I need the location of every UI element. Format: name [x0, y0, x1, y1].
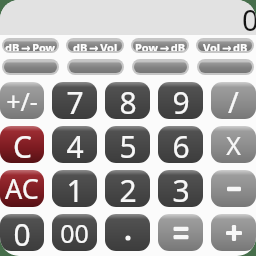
- button[interactable]: Preset slot: [69, 61, 122, 73]
- button[interactable]: Preset slot: [134, 61, 187, 73]
- button[interactable]: Plus: [211, 214, 256, 251]
- button[interactable]: Minus: [211, 170, 256, 207]
- button[interactable]: 5: [105, 126, 150, 163]
- button[interactable]: Vol → dB: [198, 40, 252, 51]
- button[interactable]: dB → Pow: [4, 40, 57, 51]
- button[interactable]: Preset slot: [199, 61, 252, 73]
- button[interactable]: Pow → dB: [133, 40, 187, 51]
- staticText: C: [13, 126, 32, 163]
- button[interactable]: Preset slot: [4, 61, 57, 73]
- button[interactable]: 3: [158, 170, 203, 207]
- staticText: 2: [119, 170, 137, 207]
- staticText: Pow → dB: [135, 40, 186, 51]
- staticText: 00: [60, 216, 89, 250]
- staticText: +/-: [6, 84, 38, 118]
- staticText: 5: [119, 126, 137, 163]
- button[interactable]: /: [211, 82, 256, 119]
- staticText: /: [228, 82, 239, 119]
- staticText: 0: [242, 0, 256, 35]
- button[interactable]: X: [211, 126, 256, 163]
- button[interactable]: +/-: [0, 82, 44, 119]
- button[interactable]: 0: [0, 214, 44, 251]
- staticText: dB → Vol: [73, 40, 118, 51]
- button[interactable]: 4: [52, 126, 97, 163]
- staticText: 8: [119, 82, 137, 119]
- staticText: dB → Pow: [5, 40, 56, 51]
- staticText: 4: [66, 126, 84, 163]
- button[interactable]: Equals: [158, 214, 203, 251]
- staticText: X: [226, 128, 241, 162]
- button[interactable]: AC: [0, 170, 44, 207]
- button[interactable]: 6: [158, 126, 203, 163]
- staticText: 1: [66, 170, 84, 207]
- button[interactable]: C: [0, 126, 44, 163]
- staticText: 0: [13, 214, 31, 251]
- button[interactable]: Decimal point: [105, 214, 150, 251]
- staticText: 6: [172, 126, 190, 163]
- button[interactable]: 8: [105, 82, 150, 119]
- staticText: 9: [172, 82, 190, 119]
- staticText: 3: [172, 170, 190, 207]
- button[interactable]: 7: [52, 82, 97, 119]
- button[interactable]: 00: [52, 214, 97, 251]
- button[interactable]: 1: [52, 170, 97, 207]
- staticText: AC: [5, 170, 39, 207]
- staticText: Vol → dB: [203, 40, 248, 51]
- button[interactable]: 2: [105, 170, 150, 207]
- staticText: 7: [66, 82, 84, 119]
- button[interactable]: 9: [158, 82, 203, 119]
- button[interactable]: dB → Vol: [68, 40, 122, 51]
